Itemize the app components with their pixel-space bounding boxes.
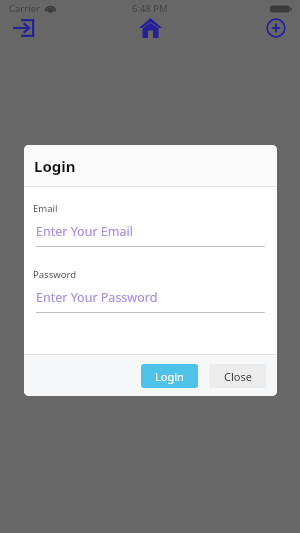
staticText: Login bbox=[155, 369, 184, 384]
staticText: Close bbox=[224, 369, 252, 384]
button[interactable]: Login bbox=[141, 364, 198, 388]
staticText: Email bbox=[33, 202, 58, 215]
button[interactable]: Add bbox=[258, 10, 294, 46]
button[interactable]: Home bbox=[130, 8, 170, 48]
staticText: 6:48 PM bbox=[132, 2, 168, 15]
button[interactable]: Enter Your Password bbox=[36, 289, 265, 313]
staticText: Enter Your Password bbox=[36, 289, 158, 306]
button[interactable]: Close bbox=[209, 364, 266, 388]
staticText: Login bbox=[34, 156, 76, 176]
staticText: Carrier bbox=[9, 2, 40, 15]
button[interactable]: Sign in bbox=[5, 10, 41, 46]
staticText: Enter Your Email bbox=[36, 223, 133, 240]
staticText: Password bbox=[33, 268, 76, 281]
button[interactable]: Enter Your Email bbox=[36, 223, 265, 247]
